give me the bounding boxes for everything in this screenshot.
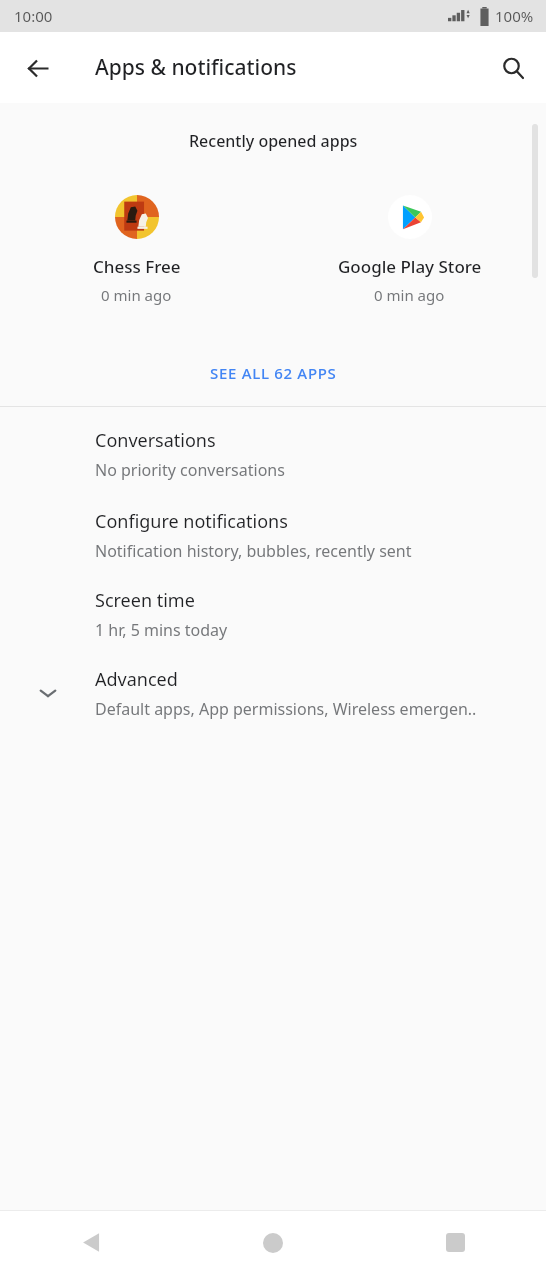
button[interactable]: Chess Free [0,195,273,305]
staticText: Notification history, bubbles, recently … [95,540,412,562]
staticText: No priority conversations [95,459,285,481]
staticText: SEE ALL 62 APPS [210,363,337,383]
staticText: Chess Free [93,255,181,278]
staticText: Screen time [95,588,195,613]
button[interactable]: Advanced [0,641,546,720]
staticText: 0 min ago [101,285,172,305]
staticText: 1 hr, 5 mins today [95,619,228,641]
staticText: Advanced [95,667,178,692]
button[interactable]: Screen time [0,562,546,641]
button[interactable]: Configure notifications [0,481,546,562]
staticText: Conversations [95,428,216,453]
staticText: 10:00 [14,6,53,26]
staticText: 0 min ago [374,285,445,305]
button[interactable]: Conversations [0,407,546,481]
staticText: Configure notifications [95,509,288,534]
button[interactable]: Recent apps [364,1211,546,1274]
button[interactable]: Home [182,1211,364,1274]
staticText: Default apps, App permissions, Wireless … [95,698,477,720]
button[interactable]: Google Play Store [273,195,546,305]
button[interactable]: Search [489,44,537,92]
staticText: Google Play Store [338,255,482,278]
staticText: 100% [495,6,534,26]
staticText: Recently opened apps [189,130,358,152]
button[interactable]: Back [14,44,62,92]
button[interactable]: Back [0,1211,182,1274]
staticText: Apps & notifications [95,53,297,82]
button[interactable]: SEE ALL 62 APPS [0,351,546,395]
